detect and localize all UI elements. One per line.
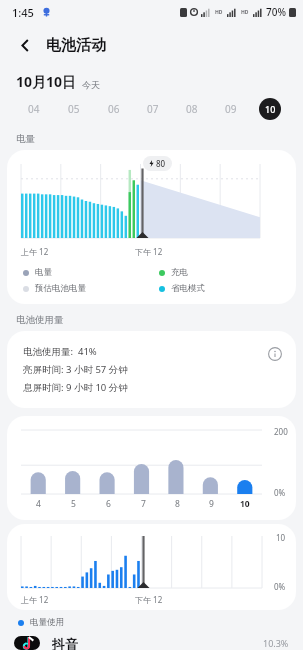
staticText: HD: [241, 9, 249, 16]
staticText: 10: [276, 532, 286, 543]
staticText: 80: [156, 158, 166, 169]
staticText: 06: [108, 102, 120, 116]
staticText: 6: [106, 498, 111, 510]
button[interactable]: 4: [7, 416, 296, 520]
button[interactable]: Info: [264, 343, 286, 365]
staticText: 今天: [82, 79, 100, 90]
button[interactable]: 07: [133, 94, 172, 124]
button[interactable]: 电池使用量: 41%: [7, 331, 296, 408]
staticText: 亮屏时间: 3 小时 57 分钟: [23, 363, 128, 376]
staticText: HD: [215, 9, 223, 16]
staticText: 电池活动: [46, 36, 106, 55]
staticText: 70%: [266, 5, 286, 19]
staticText: 09: [225, 102, 237, 116]
staticText: 10: [240, 498, 250, 510]
staticText: 息屏时间: 9 小时 10 分钟: [23, 381, 128, 394]
staticText: 上午 12: [21, 246, 49, 257]
staticText: 上午 12: [21, 594, 49, 605]
button[interactable]: 10: [7, 524, 296, 610]
staticText: 充电: [171, 267, 188, 278]
button[interactable]: 04: [14, 94, 54, 124]
staticText: 10.3%: [263, 637, 289, 649]
staticText: 9: [209, 498, 214, 510]
staticText: 08: [186, 102, 198, 116]
staticText: 电量使用: [30, 617, 64, 628]
staticText: 电池使用量: 41%: [23, 345, 97, 358]
staticText: 0%: [274, 581, 286, 592]
button[interactable]: 80: [7, 150, 296, 304]
staticText: 下午 12: [135, 246, 163, 257]
button[interactable]: 09: [211, 94, 250, 124]
staticText: 电量: [35, 267, 52, 278]
staticText: 200: [274, 426, 288, 437]
staticText: 1:45: [12, 5, 34, 20]
button[interactable]: 05: [54, 94, 94, 124]
staticText: 10月10日: [16, 72, 77, 91]
staticText: 电池使用量: [16, 314, 64, 326]
staticText: 电量: [16, 133, 35, 145]
button[interactable]: 10: [250, 94, 289, 124]
staticText: 预估电池电量: [35, 283, 86, 294]
staticText: 05: [68, 102, 80, 116]
button[interactable]: 抖音: [0, 636, 303, 650]
staticText: 07: [147, 102, 159, 116]
staticText: 8: [175, 498, 180, 510]
staticText: 0%: [274, 487, 286, 498]
staticText: 5: [71, 498, 76, 510]
staticText: 10: [265, 103, 276, 115]
staticText: 04: [28, 102, 40, 116]
button[interactable]: 08: [172, 94, 211, 124]
staticText: 抖音: [52, 636, 78, 650]
button[interactable]: 06: [94, 94, 133, 124]
staticText: 省电模式: [171, 283, 205, 294]
button[interactable]: Back: [10, 30, 40, 60]
staticText: 下午 12: [135, 594, 163, 605]
staticText: 7: [141, 498, 146, 510]
staticText: 4: [36, 498, 41, 510]
